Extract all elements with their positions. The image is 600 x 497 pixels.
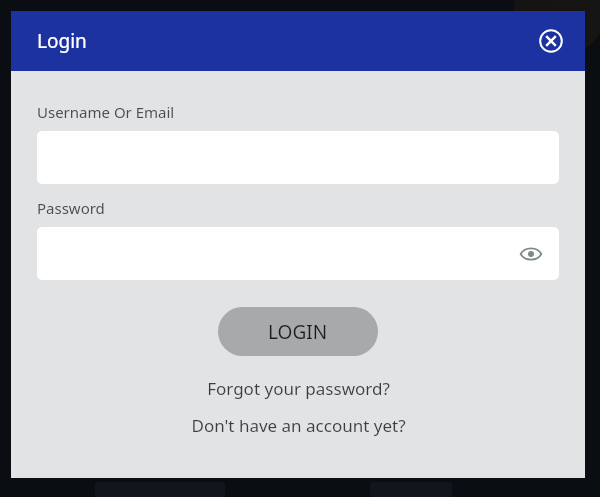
staticText: Username Or Email <box>37 102 175 122</box>
staticText: LOGIN <box>268 319 328 345</box>
staticText: Forgot your password? <box>207 377 390 400</box>
button[interactable]: Forgot your password? <box>37 377 559 400</box>
button[interactable]: Show password <box>37 227 559 280</box>
button[interactable]: Don't have an account yet? <box>37 414 559 437</box>
staticText: Don't have an account yet? <box>191 414 406 437</box>
staticText: Password <box>37 198 105 218</box>
staticText: Login <box>37 28 87 54</box>
button[interactable]: Close <box>536 26 566 56</box>
button[interactable]: Show password <box>516 239 546 269</box>
button[interactable]: LOGIN <box>218 307 378 356</box>
